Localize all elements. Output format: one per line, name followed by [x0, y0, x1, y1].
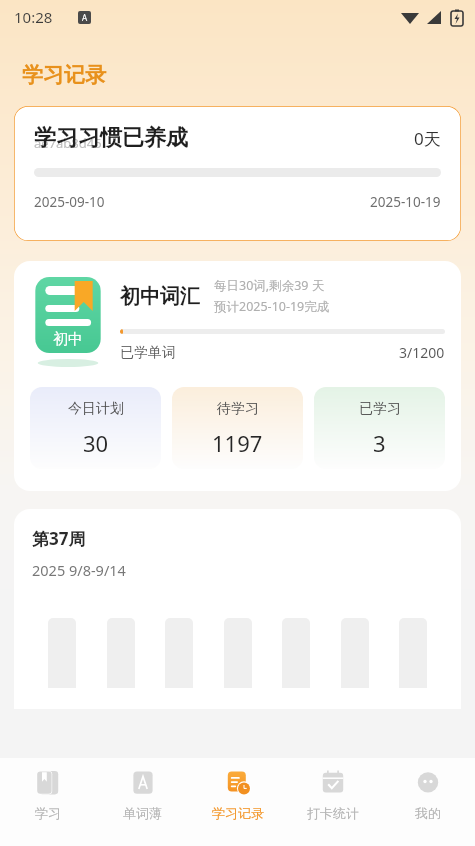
button[interactable]: 学习: [0, 758, 95, 846]
staticText: 单词薄: [123, 805, 162, 821]
staticText: A: [82, 12, 88, 23]
staticText: 2025 9/8-9/14: [32, 560, 126, 580]
staticText: 待学习: [217, 400, 259, 418]
staticText: 我的: [415, 805, 441, 821]
staticText: 第37周: [32, 527, 86, 550]
button[interactable]: 已学习: [314, 387, 445, 469]
staticText: 预计2025-10-19完成: [214, 298, 330, 315]
other: 打卡统计: [318, 768, 348, 798]
staticText: 已学习: [359, 400, 401, 418]
staticText: 30: [83, 428, 109, 458]
button[interactable]: 打卡统计: [285, 758, 380, 846]
button[interactable]: 我的: [380, 758, 475, 846]
button[interactable]: 初中: [14, 261, 461, 491]
staticText: 已学单词: [120, 344, 176, 362]
button[interactable]: 待学习: [172, 387, 303, 469]
staticText: 每日30词,剩余39 天: [214, 277, 325, 294]
button[interactable]: 今日计划: [30, 387, 161, 469]
staticText: 3/1200: [399, 343, 445, 362]
staticText: 初中词汇: [120, 284, 200, 309]
staticText: 学习记录: [212, 805, 264, 821]
staticText: 1197: [212, 428, 263, 458]
staticText: 今日计划: [68, 400, 124, 418]
button[interactable]: ae7ab8d45: [14, 106, 461, 241]
staticText: 初中: [53, 330, 83, 349]
other: 学习记录: [223, 768, 253, 798]
staticText: 0天: [414, 127, 441, 150]
other: 我的: [413, 768, 443, 798]
staticText: 学习习惯已养成: [34, 124, 188, 152]
staticText: 学习: [35, 805, 61, 821]
button[interactable]: 单词薄: [95, 758, 190, 846]
button[interactable]: 学习记录: [190, 758, 285, 846]
staticText: 打卡统计: [307, 805, 359, 821]
button[interactable]: 第37周: [14, 509, 461, 709]
staticText: 3: [373, 428, 386, 458]
staticText: ae7ab8d45: [34, 134, 102, 152]
other: 单词薄: [128, 768, 158, 798]
staticText: 2025-10-19: [370, 193, 441, 211]
staticText: 10:28: [14, 7, 53, 27]
staticText: 2025-09-10: [34, 193, 105, 211]
other: 学习: [33, 768, 63, 798]
staticText: 学习记录: [22, 62, 106, 88]
